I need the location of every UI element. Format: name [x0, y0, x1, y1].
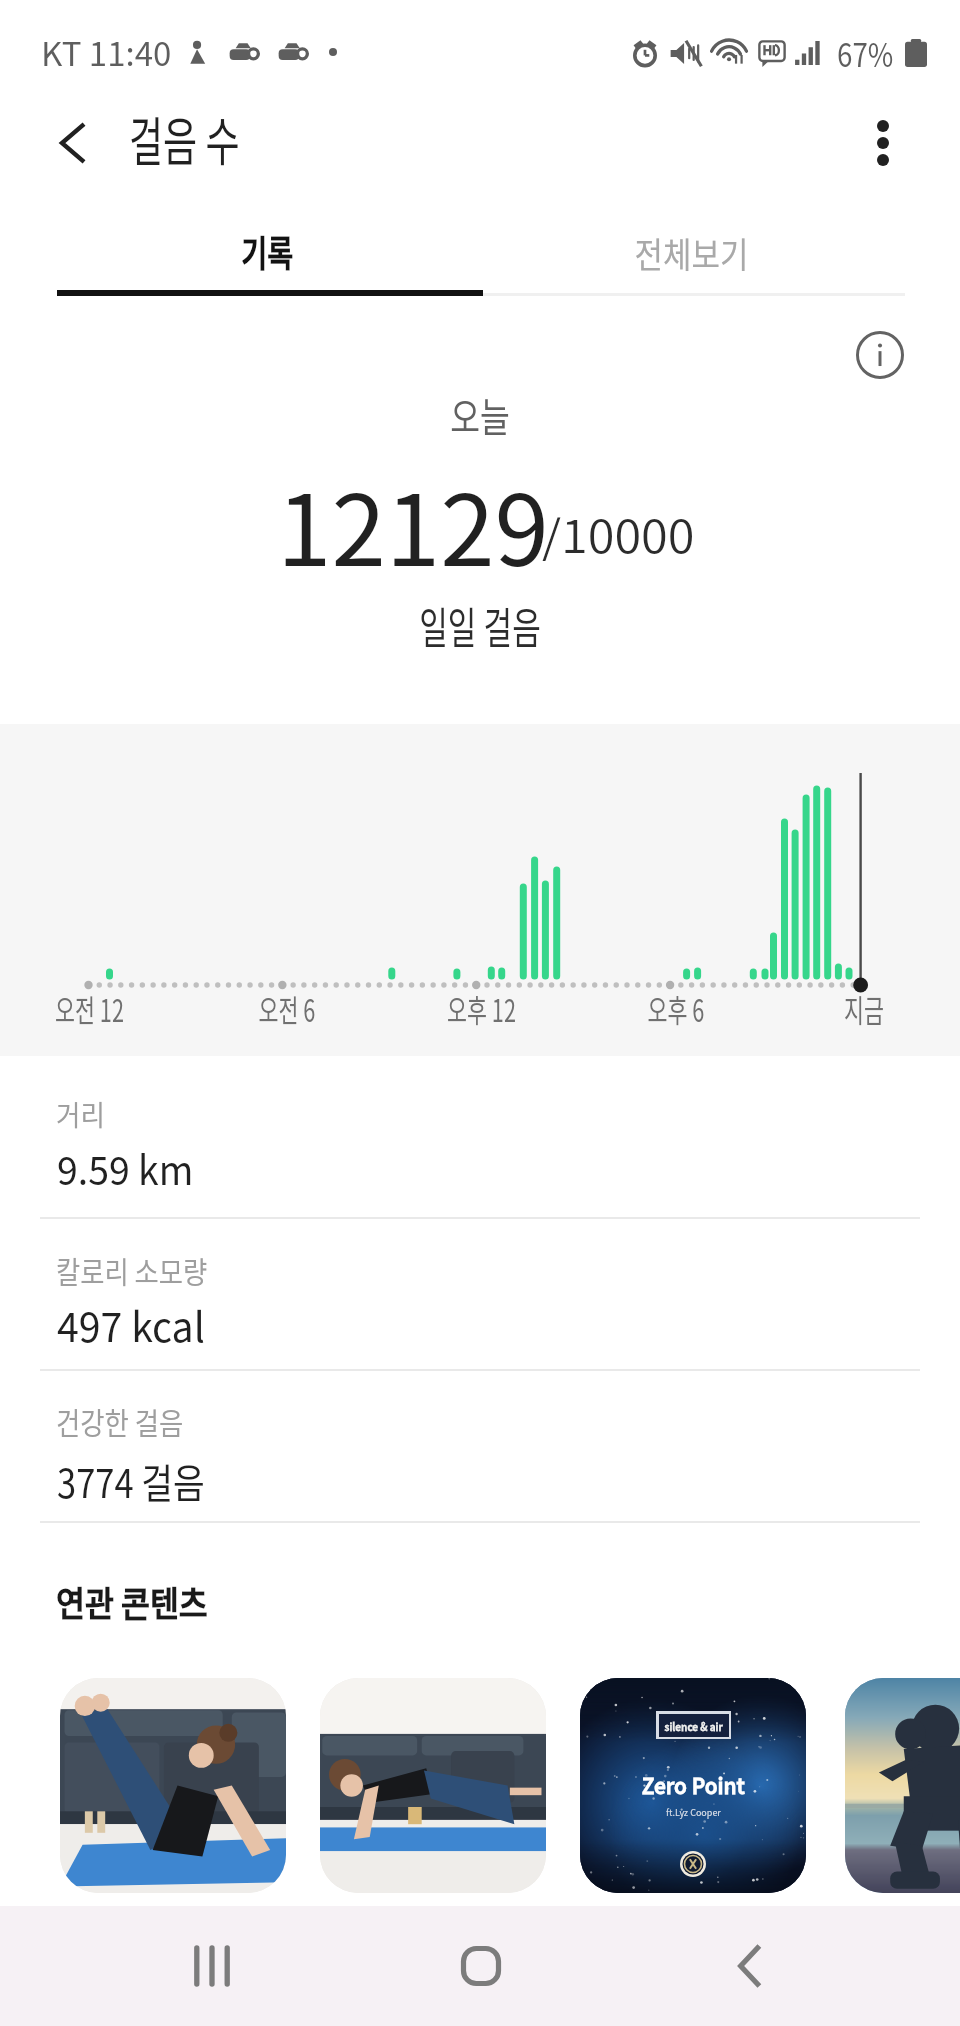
staticText: 오후 6 [647, 986, 705, 1031]
staticText: 전체보기 [634, 227, 748, 278]
button[interactable]: Home [421, 1906, 541, 2026]
button[interactable]: 전체보기 [478, 204, 904, 300]
staticText: 건강한 걸음 [56, 1399, 184, 1442]
staticText: 연관 콘텐츠 [56, 1576, 208, 1627]
staticText: 오후 12 [447, 986, 516, 1031]
staticText: 3774 걸음 [57, 1452, 205, 1510]
staticText: 497 kcal [57, 1294, 205, 1354]
staticText: 12129 [277, 452, 549, 594]
staticText: ft.Lyz Cooper [666, 1806, 721, 1819]
staticText: KT 11:40 [41, 28, 172, 76]
button[interactable]: Information [838, 313, 922, 397]
button[interactable]: Recent apps [152, 1906, 272, 2026]
button[interactable]: silence & air [580, 1678, 806, 1893]
button[interactable] [320, 1678, 546, 1893]
staticText: 거리 [56, 1094, 105, 1135]
button[interactable]: Back [690, 1906, 810, 2026]
staticText: 지금 [844, 986, 884, 1031]
staticText: 67% [837, 29, 894, 77]
staticText: 일일 걸음 [419, 594, 541, 656]
staticText: 9.59 km [57, 1139, 194, 1196]
button[interactable] [60, 1678, 286, 1893]
staticText: 칼로리 소모량 [56, 1248, 208, 1291]
staticText: 오전 6 [258, 986, 316, 1031]
button[interactable]: More options [840, 100, 926, 186]
button[interactable]: 건강한 걸음 [0, 1394, 960, 1520]
staticText: /10000 [542, 501, 695, 566]
staticText: 걸음 수 [129, 101, 240, 176]
staticText: silence & air [665, 1718, 723, 1734]
staticText: 기록 [241, 225, 294, 277]
button[interactable] [845, 1678, 960, 1893]
button[interactable]: 칼로리 소모량 [0, 1242, 960, 1368]
button[interactable]: 기록 [54, 203, 480, 299]
staticText: 오전 12 [55, 986, 124, 1031]
staticText: Zero Point [642, 1768, 745, 1800]
button[interactable]: Back [30, 100, 116, 186]
button[interactable]: 거리 [0, 1090, 960, 1216]
staticText: 오늘 [450, 386, 510, 444]
